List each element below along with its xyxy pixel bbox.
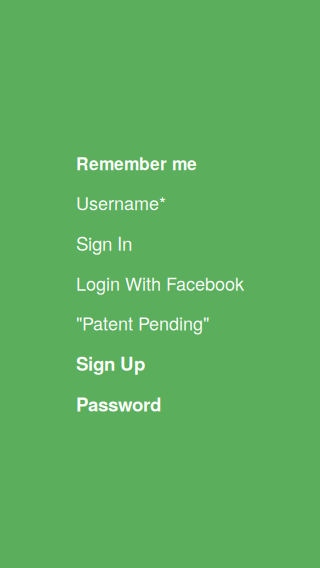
staticText: Sign In — [76, 229, 132, 256]
staticText: Username* — [76, 190, 166, 215]
staticText: Password — [76, 390, 161, 417]
staticText: "Patent Pending" — [76, 310, 209, 336]
staticText: Sign Up — [76, 350, 145, 376]
staticText: Remember me — [76, 151, 197, 176]
staticText: Login With Facebook — [76, 270, 244, 296]
